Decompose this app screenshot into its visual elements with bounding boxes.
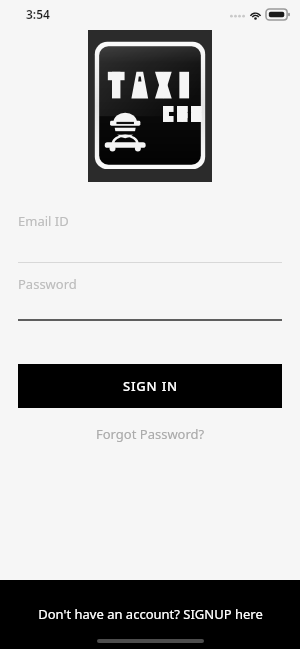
staticText: 3:54 xyxy=(26,6,50,22)
button[interactable]: Don't have an account? SIGNUP here xyxy=(0,580,300,649)
staticText: Don't have an account? SIGNUP here xyxy=(38,605,263,623)
button[interactable]: Password xyxy=(18,275,282,321)
button[interactable]: Email ID xyxy=(18,212,282,263)
button[interactable]: SIGN IN xyxy=(18,364,282,408)
staticText: SIGN IN xyxy=(123,377,178,395)
staticText: Password xyxy=(18,275,77,293)
button[interactable]: Forgot Password? xyxy=(88,422,213,446)
staticText: Email ID xyxy=(18,212,69,230)
